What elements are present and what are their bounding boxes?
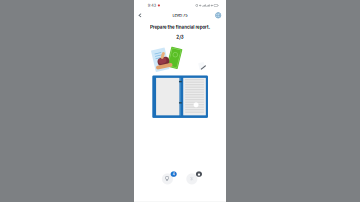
staticText: 9:43 [192,13,228,33]
staticText: Prepare the financial report. [201,104,360,126]
button[interactable]: Back [140,40,182,90]
